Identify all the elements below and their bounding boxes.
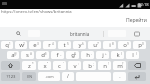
staticText: v [73,62,77,70]
staticText: ' [63,62,64,66]
staticText: a [11,51,15,59]
staticText: g [71,51,75,59]
button[interactable]: ?123 [1,72,20,81]
staticText: & [74,52,77,56]
button[interactable]: t [58,41,71,49]
staticText: e [33,41,37,49]
staticText: 7 [97,42,99,46]
button[interactable]: Backspace [128,61,146,70]
staticText: 3 [37,42,39,46]
button[interactable]: p [133,41,146,49]
staticText: p [138,41,142,49]
button[interactable]: c [53,61,66,70]
staticText: ! [108,62,109,66]
staticText: b [88,62,92,70]
staticText: ( [121,52,122,56]
staticText: l [132,51,134,59]
button[interactable]: Shift [1,61,20,70]
button[interactable]: . [113,72,126,81]
button[interactable]: z [22,61,36,70]
staticText: m [117,62,123,70]
staticText: " [47,62,49,66]
button[interactable]: .com [38,72,60,81]
button[interactable]: g [66,51,79,59]
staticText: ) [136,52,137,56]
button[interactable]: o [118,41,131,49]
staticText: / [67,73,69,80]
staticText: s [26,51,29,59]
button[interactable]: EN [22,72,36,81]
staticText: z [28,62,31,70]
staticText: 8 [112,42,114,46]
button[interactable]: k [111,51,124,59]
staticText: : [78,62,79,66]
staticText: k [116,51,120,59]
button[interactable]: u [88,41,101,49]
staticText: y [78,41,82,49]
staticText: + [105,52,107,56]
staticText: ?123 [6,74,16,80]
button[interactable]: / [62,72,74,81]
button[interactable]: m [113,61,126,70]
staticText: r [48,41,51,49]
staticText: u [93,41,97,49]
button[interactable]: b [83,61,96,70]
staticText: 6 [82,42,84,46]
staticText: * [32,62,34,66]
button[interactable]: r [43,41,56,49]
button[interactable]: e [29,41,41,49]
staticText: _ [60,52,62,56]
staticText: 0 [142,42,144,46]
other: Keyboard settings [134,31,140,37]
staticText: j [102,51,104,59]
staticText: 1 [9,42,11,46]
staticText: - [91,52,92,56]
button[interactable]: w [15,41,27,49]
button[interactable]: h [81,51,94,59]
button[interactable]: a [7,51,19,59]
button[interactable]: y [73,41,86,49]
staticText: x [43,62,47,70]
button[interactable]: Enter [128,72,146,81]
staticText: 12:18 [138,2,149,8]
button[interactable]: f [51,51,64,59]
button[interactable]: j [96,51,109,59]
staticText: @ [14,52,17,56]
staticText: ? [122,62,124,66]
staticText: Перейти [126,17,147,24]
staticText: f [56,51,59,59]
staticText: 5 [67,42,69,46]
button[interactable]: d [36,51,49,59]
button[interactable]: n [98,61,111,70]
other: Search [16,31,21,36]
staticText: $ [45,52,47,56]
staticText: 2 [23,42,25,46]
button[interactable]: v [68,61,81,70]
staticText: w [19,41,24,49]
staticText: h [86,51,90,59]
staticText: t [63,41,66,49]
staticText: https://onero.tv/en/shows/britannia [1,9,72,14]
staticText: EN [27,74,32,79]
staticText: # [30,52,32,56]
button[interactable]: q [1,41,13,49]
button[interactable]: x [38,61,51,70]
staticText: .com [45,74,54,79]
staticText: i [109,41,111,49]
staticText: britannia [70,31,90,37]
staticText: o [123,41,127,49]
button[interactable]: s [21,51,34,59]
staticText: d [41,51,45,59]
button[interactable]: l [126,51,139,59]
button[interactable]: Перейти [124,15,149,26]
staticText: . [119,73,121,80]
staticText: 9 [127,42,129,46]
button[interactable]: i [103,41,116,49]
staticText: 4 [52,42,54,46]
staticText: ; [93,62,94,66]
staticText: n [103,62,107,70]
staticText: q [5,41,9,49]
